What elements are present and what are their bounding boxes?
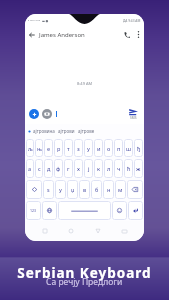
button[interactable]: Enter xyxy=(128,201,143,220)
button[interactable]: Back xyxy=(92,225,104,237)
button[interactable]: ж xyxy=(134,159,143,178)
button[interactable]: п xyxy=(114,139,123,157)
button[interactable]: љ xyxy=(26,139,34,157)
button[interactable]: ћ xyxy=(124,159,133,178)
button[interactable]: Backspace xyxy=(127,180,143,199)
staticText: џ xyxy=(71,186,75,193)
button[interactable]: Change language xyxy=(42,201,57,220)
staticText: • ᵛᵒᵀᴱ ᵛᵒᵀᴱ ▬ ● xyxy=(28,19,49,23)
button[interactable]: ч xyxy=(114,159,123,178)
button[interactable]: м xyxy=(115,180,126,199)
button[interactable]: Recents xyxy=(39,225,51,237)
button[interactable]: у xyxy=(84,139,93,157)
staticText: Са речју Предлоги xyxy=(46,276,123,288)
button[interactable]: о xyxy=(104,139,113,157)
staticText: г xyxy=(67,165,70,172)
staticText: с xyxy=(38,165,41,172)
button[interactable]: а xyxy=(26,159,34,178)
button[interactable]: е xyxy=(44,139,53,157)
button[interactable]: к xyxy=(94,159,103,178)
button[interactable]: Shift xyxy=(26,180,42,199)
staticText: њ xyxy=(37,145,42,152)
staticText: ш xyxy=(126,145,132,152)
staticText: ч xyxy=(117,165,121,172)
staticText: ж xyxy=(136,165,141,172)
staticText: д xyxy=(47,165,51,172)
staticText: б xyxy=(95,186,99,193)
staticText: м xyxy=(118,186,123,193)
button[interactable]: ђ xyxy=(134,139,143,157)
button[interactable]: з xyxy=(74,139,83,157)
staticText: л xyxy=(107,165,111,172)
button[interactable]: и xyxy=(94,139,103,157)
staticText: 8:49 AM xyxy=(77,81,93,86)
button[interactable]: ф xyxy=(54,159,63,178)
staticText: з xyxy=(77,145,80,152)
button[interactable]: Back xyxy=(25,27,39,42)
button[interactable]: More options xyxy=(133,27,144,42)
staticText: к xyxy=(97,165,101,172)
button[interactable]: Home xyxy=(65,225,77,237)
button[interactable]: в xyxy=(79,180,90,199)
button[interactable]: ј xyxy=(84,159,93,178)
button[interactable]: б xyxy=(91,180,102,199)
button[interactable]: Add attachment xyxy=(29,109,39,119)
staticText: ѕ xyxy=(47,186,50,193)
button[interactable]: р xyxy=(54,139,63,157)
button[interactable]: ајтровина xyxy=(33,128,55,134)
button[interactable]: д xyxy=(44,159,53,178)
button[interactable]: л xyxy=(104,159,113,178)
button[interactable]: н xyxy=(103,180,114,199)
staticText: ћ xyxy=(127,165,131,172)
staticText: а xyxy=(28,165,32,172)
button[interactable]: 123 xyxy=(26,201,41,220)
staticText: р xyxy=(57,145,61,152)
staticText: ђ xyxy=(137,145,141,152)
staticText: у xyxy=(59,186,62,193)
button[interactable]: Emoji xyxy=(112,201,127,220)
button[interactable]: у xyxy=(55,180,66,199)
button[interactable]: Call xyxy=(120,27,133,42)
staticText: ф xyxy=(56,165,61,172)
button[interactable]: Gallery xyxy=(42,109,52,119)
button[interactable]: џ xyxy=(67,180,78,199)
staticText: у xyxy=(87,145,90,152)
staticText: 123 xyxy=(30,208,37,213)
button[interactable]: ајтрове xyxy=(78,128,95,134)
staticText: ј xyxy=(88,165,90,172)
staticText: љ xyxy=(28,145,33,152)
staticText: т xyxy=(67,145,70,152)
staticText: James Anderson xyxy=(39,31,85,39)
staticText: SMS xyxy=(130,116,137,120)
button[interactable]: х xyxy=(74,159,83,178)
button[interactable]: с xyxy=(35,159,43,178)
button[interactable]: г xyxy=(64,159,73,178)
button[interactable]: т xyxy=(64,139,73,157)
button[interactable]: ш xyxy=(124,139,133,157)
staticText: и xyxy=(97,145,101,152)
button[interactable]: њ xyxy=(35,139,43,157)
staticText: Serbian Keyboard xyxy=(17,264,152,282)
staticText: о xyxy=(107,145,111,152)
button[interactable]: Keyboard xyxy=(118,225,130,237)
button[interactable]: Send SMS xyxy=(127,109,140,120)
staticText: в xyxy=(83,186,87,193)
button[interactable]: Space xyxy=(58,201,111,220)
staticText: е xyxy=(47,145,51,152)
staticText: н xyxy=(107,186,111,193)
staticText: ДА 9:43 AM xyxy=(123,19,141,23)
staticText: х xyxy=(77,165,80,172)
button[interactable]: ѕ xyxy=(43,180,54,199)
staticText: п xyxy=(117,145,121,152)
button[interactable]: ајтрови xyxy=(58,128,75,134)
